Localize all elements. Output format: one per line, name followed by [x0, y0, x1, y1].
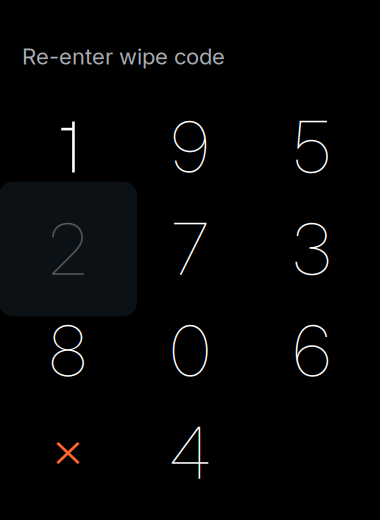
button[interactable]	[7, 96, 129, 198]
staticText: 2	[49, 206, 87, 292]
staticText: 4	[169, 410, 210, 496]
staticText: 0	[170, 308, 209, 394]
button[interactable]: 3	[251, 198, 373, 300]
staticText: 6	[293, 308, 330, 394]
button[interactable]: 6	[251, 300, 373, 402]
button[interactable]: 2	[7, 198, 129, 300]
staticText: 5	[294, 104, 330, 190]
staticText: 3	[293, 206, 331, 292]
button[interactable]: 9	[129, 96, 251, 198]
staticText: 9	[171, 104, 208, 190]
button[interactable]: Delete	[7, 402, 129, 504]
staticText: 7	[172, 206, 208, 292]
staticText: Re-enter wipe code	[22, 43, 225, 70]
button[interactable]: 4	[129, 402, 251, 504]
button[interactable]: 0	[129, 300, 251, 402]
button[interactable]: 7	[129, 198, 251, 300]
button[interactable]: 5	[251, 96, 373, 198]
button[interactable]: 8	[7, 300, 129, 402]
staticText: 8	[49, 308, 86, 394]
